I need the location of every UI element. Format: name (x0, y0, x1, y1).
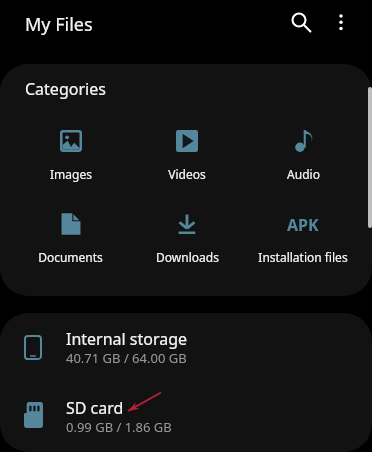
button[interactable]: Videos (129, 120, 245, 260)
button[interactable]: Internal storage (0, 315, 372, 384)
button[interactable]: More options (327, 9, 355, 37)
staticText: Images (50, 166, 92, 182)
button[interactable]: Images (12, 120, 129, 260)
button[interactable]: Audio (245, 120, 361, 260)
button[interactable]: Downloads (129, 203, 245, 293)
staticText: Categories (25, 78, 106, 100)
staticText: APK (287, 214, 319, 236)
staticText: Documents (38, 249, 103, 265)
staticText: My Files (25, 12, 93, 37)
button[interactable]: Documents (12, 203, 129, 293)
staticText: Audio (287, 166, 320, 182)
staticText: Internal storage (66, 328, 188, 350)
staticText: Videos (168, 166, 206, 182)
staticText: 0.99 GB / 1.86 GB (66, 418, 172, 436)
staticText: Installation files (258, 249, 348, 265)
staticText: 40.71 GB / 64.00 GB (66, 349, 187, 367)
staticText: Downloads (156, 249, 219, 265)
button[interactable]: APK (245, 203, 361, 293)
staticText: SD card (66, 397, 124, 419)
button[interactable]: Search (279, 0, 323, 44)
button[interactable]: SD card (0, 384, 372, 452)
